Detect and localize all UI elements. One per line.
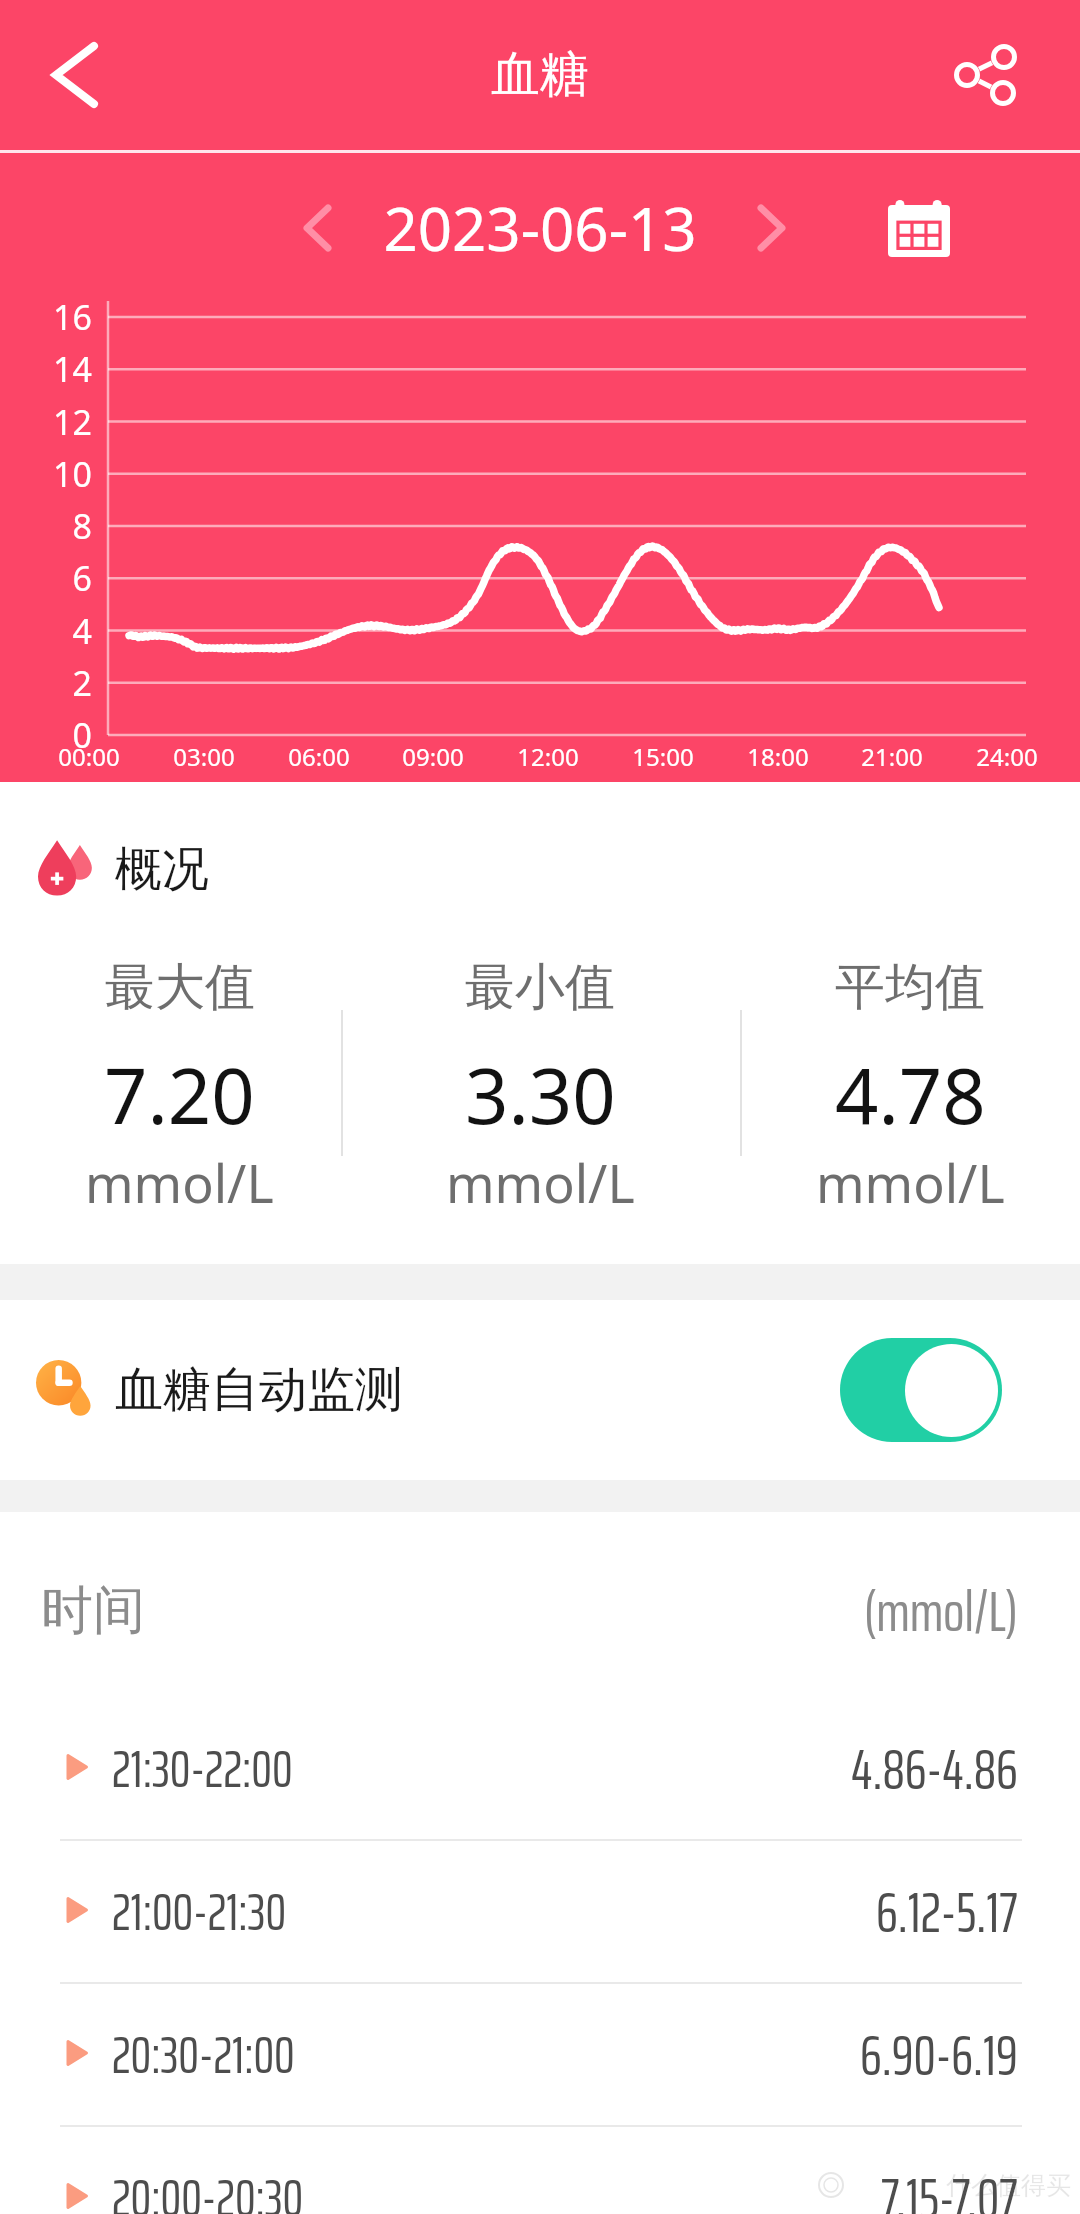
staticText: 4 bbox=[0, 608, 92, 654]
button[interactable]: 21:00-21:30 bbox=[0, 1841, 1080, 1984]
staticText: 18:00 bbox=[718, 740, 838, 773]
staticText: 10 bbox=[0, 451, 92, 497]
staticText: 7.15-7.07 bbox=[881, 2154, 1018, 2214]
staticText: 00:00 bbox=[29, 740, 149, 773]
staticText: 21:30-22:00 bbox=[112, 1728, 293, 1810]
button[interactable]: 血糖自动监测 bbox=[0, 1300, 1080, 1480]
staticText: 03:00 bbox=[144, 740, 264, 773]
staticText: 4.86-4.86 bbox=[851, 1725, 1018, 1813]
staticText: 6 bbox=[0, 555, 92, 601]
staticText: 7.20 bbox=[104, 1043, 255, 1147]
staticText: 什么值得买 bbox=[946, 2170, 1071, 2201]
staticText: 4.78 bbox=[835, 1043, 986, 1147]
staticText: 20:30-21:00 bbox=[112, 2014, 295, 2096]
staticText: 8 bbox=[0, 503, 92, 549]
staticText: 概况 bbox=[115, 840, 209, 899]
staticText: (mmol/L) bbox=[864, 1567, 1018, 1655]
staticText: 3.30 bbox=[465, 1043, 616, 1147]
button[interactable]: Next day bbox=[732, 188, 812, 268]
staticText: mmol/L bbox=[816, 1147, 1005, 1218]
button[interactable]: Previous day bbox=[277, 188, 357, 268]
staticText: 时间 bbox=[41, 1578, 145, 1644]
button[interactable]: Back bbox=[0, 0, 150, 150]
staticText: 平均值 bbox=[835, 956, 985, 1019]
staticText: 06:00 bbox=[259, 740, 379, 773]
staticText: 09:00 bbox=[373, 740, 493, 773]
staticText: 最大值 bbox=[105, 956, 255, 1019]
staticText: 21:00 bbox=[832, 740, 952, 773]
button[interactable]: Calendar bbox=[873, 182, 965, 274]
button[interactable]: Share bbox=[911, 0, 1061, 150]
staticText: 6.90-6.19 bbox=[860, 2011, 1018, 2099]
staticText: 14 bbox=[0, 346, 92, 392]
staticText: 21:00-21:30 bbox=[112, 1871, 287, 1953]
staticText: 12 bbox=[0, 399, 92, 445]
staticText: 12:00 bbox=[488, 740, 608, 773]
button[interactable]: Automatic blood-glucose monitoring, on bbox=[840, 1338, 1002, 1442]
staticText: 血糖自动监测 bbox=[115, 1360, 403, 1420]
button[interactable]: 21:30-22:00 bbox=[0, 1698, 1080, 1841]
staticText: mmol/L bbox=[85, 1147, 274, 1218]
staticText: 2 bbox=[0, 660, 92, 706]
button[interactable]: 20:00-20:30 bbox=[0, 2127, 1080, 2214]
staticText: 最小值 bbox=[465, 956, 615, 1019]
staticText: 血糖 bbox=[491, 44, 589, 106]
staticText: 24:00 bbox=[947, 740, 1067, 773]
staticText: mmol/L bbox=[446, 1147, 635, 1218]
staticText: 2023-06-13 bbox=[383, 187, 697, 269]
staticText: 16 bbox=[0, 294, 92, 340]
button[interactable]: 20:30-21:00 bbox=[0, 1984, 1080, 2127]
staticText: 20:00-20:30 bbox=[112, 2157, 304, 2214]
staticText: 0 bbox=[0, 712, 92, 758]
staticText: 6.12-5.17 bbox=[876, 1868, 1018, 1956]
staticText: 15:00 bbox=[603, 740, 723, 773]
